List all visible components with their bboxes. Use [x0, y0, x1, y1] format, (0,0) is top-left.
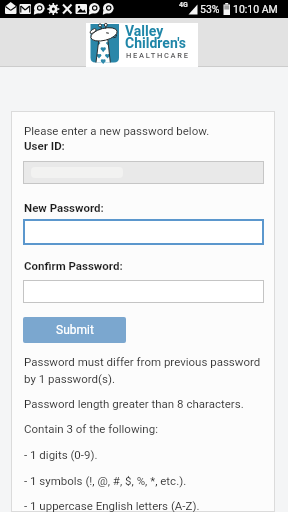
- staticText: Password must differ from previous passw…: [24, 355, 261, 368]
- button[interactable]: Submit: [23, 317, 126, 343]
- staticText: Valley: [125, 23, 164, 39]
- staticText: by 1 password(s).: [24, 372, 115, 385]
- staticText: - 1 uppercase English letters (A-Z).: [24, 499, 200, 512]
- staticText: Contain 3 of the following:: [24, 422, 158, 435]
- staticText: 4G: [179, 1, 188, 9]
- staticText: - 1 symbols (!, @, #, $, %, *, etc.).: [24, 474, 187, 487]
- staticText: HEALTHCARE: [126, 51, 190, 60]
- staticText: 53%: [200, 3, 220, 15]
- staticText: - 1 digits (0-9).: [24, 448, 98, 461]
- button[interactable]: [23, 219, 264, 245]
- staticText: Submit: [56, 323, 94, 337]
- staticText: Please enter a new password below.: [24, 124, 210, 137]
- staticText: 10:10 AM: [233, 3, 278, 15]
- staticText: User ID:: [24, 139, 65, 152]
- staticText: Confirm Password:: [24, 259, 123, 272]
- staticText: Password length greater than 8 character…: [24, 397, 244, 410]
- button[interactable]: [23, 280, 264, 303]
- staticText: New Password:: [24, 201, 104, 214]
- staticText: Children's: [125, 35, 187, 51]
